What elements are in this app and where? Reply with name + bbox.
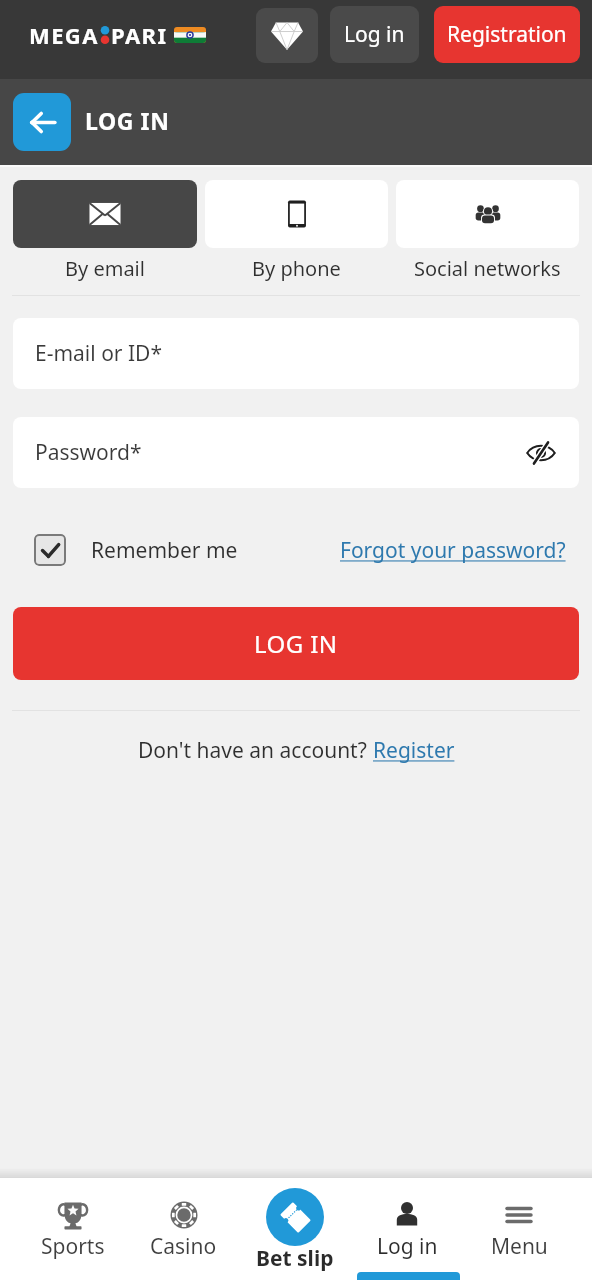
button[interactable]: Register bbox=[373, 736, 455, 765]
button[interactable]: Log in bbox=[351, 1178, 463, 1280]
staticText: LOG IN bbox=[254, 627, 338, 660]
button[interactable]: E-mail or ID* bbox=[13, 318, 579, 389]
staticText: Registration bbox=[447, 20, 567, 49]
staticText: Log in bbox=[344, 20, 405, 49]
staticText: Casino bbox=[150, 1232, 217, 1261]
staticText: Log in bbox=[377, 1232, 438, 1261]
staticText: Don't have an account? bbox=[138, 736, 373, 765]
button[interactable]: By phone bbox=[205, 180, 388, 282]
staticText: E-mail or ID* bbox=[35, 339, 163, 368]
button[interactable]: Menu bbox=[463, 1178, 575, 1280]
button[interactable]: LOG IN bbox=[13, 607, 579, 680]
button[interactable]: Registration bbox=[434, 6, 580, 63]
button[interactable]: Remember me bbox=[34, 534, 238, 566]
button[interactable]: Sports bbox=[17, 1178, 128, 1280]
button[interactable]: Back bbox=[13, 93, 71, 151]
staticText: Remember me bbox=[91, 536, 238, 565]
button[interactable]: VIP bbox=[256, 8, 318, 63]
staticText: Register bbox=[373, 736, 455, 765]
staticText: Password* bbox=[35, 438, 142, 467]
staticText: MEGA bbox=[29, 20, 99, 50]
button[interactable]: Social networks bbox=[396, 180, 579, 282]
button[interactable]: Forgot your password? bbox=[340, 536, 566, 565]
staticText: By email bbox=[65, 255, 145, 282]
staticText: PARI bbox=[111, 20, 168, 50]
button[interactable]: Show password bbox=[519, 431, 563, 475]
button[interactable]: Log in bbox=[330, 6, 419, 63]
staticText: Forgot your password? bbox=[340, 536, 566, 565]
staticText: By phone bbox=[252, 255, 341, 282]
button[interactable]: Password* bbox=[13, 417, 579, 488]
staticText: Bet slip bbox=[256, 1244, 334, 1273]
button[interactable]: By email bbox=[13, 180, 197, 282]
button[interactable]: Bet slip bbox=[239, 1178, 351, 1280]
staticText: Sports bbox=[41, 1232, 105, 1261]
staticText: Menu bbox=[491, 1232, 548, 1261]
staticText: LOG IN bbox=[85, 105, 170, 136]
button[interactable]: Casino bbox=[128, 1178, 239, 1280]
staticText: Social networks bbox=[414, 255, 561, 282]
